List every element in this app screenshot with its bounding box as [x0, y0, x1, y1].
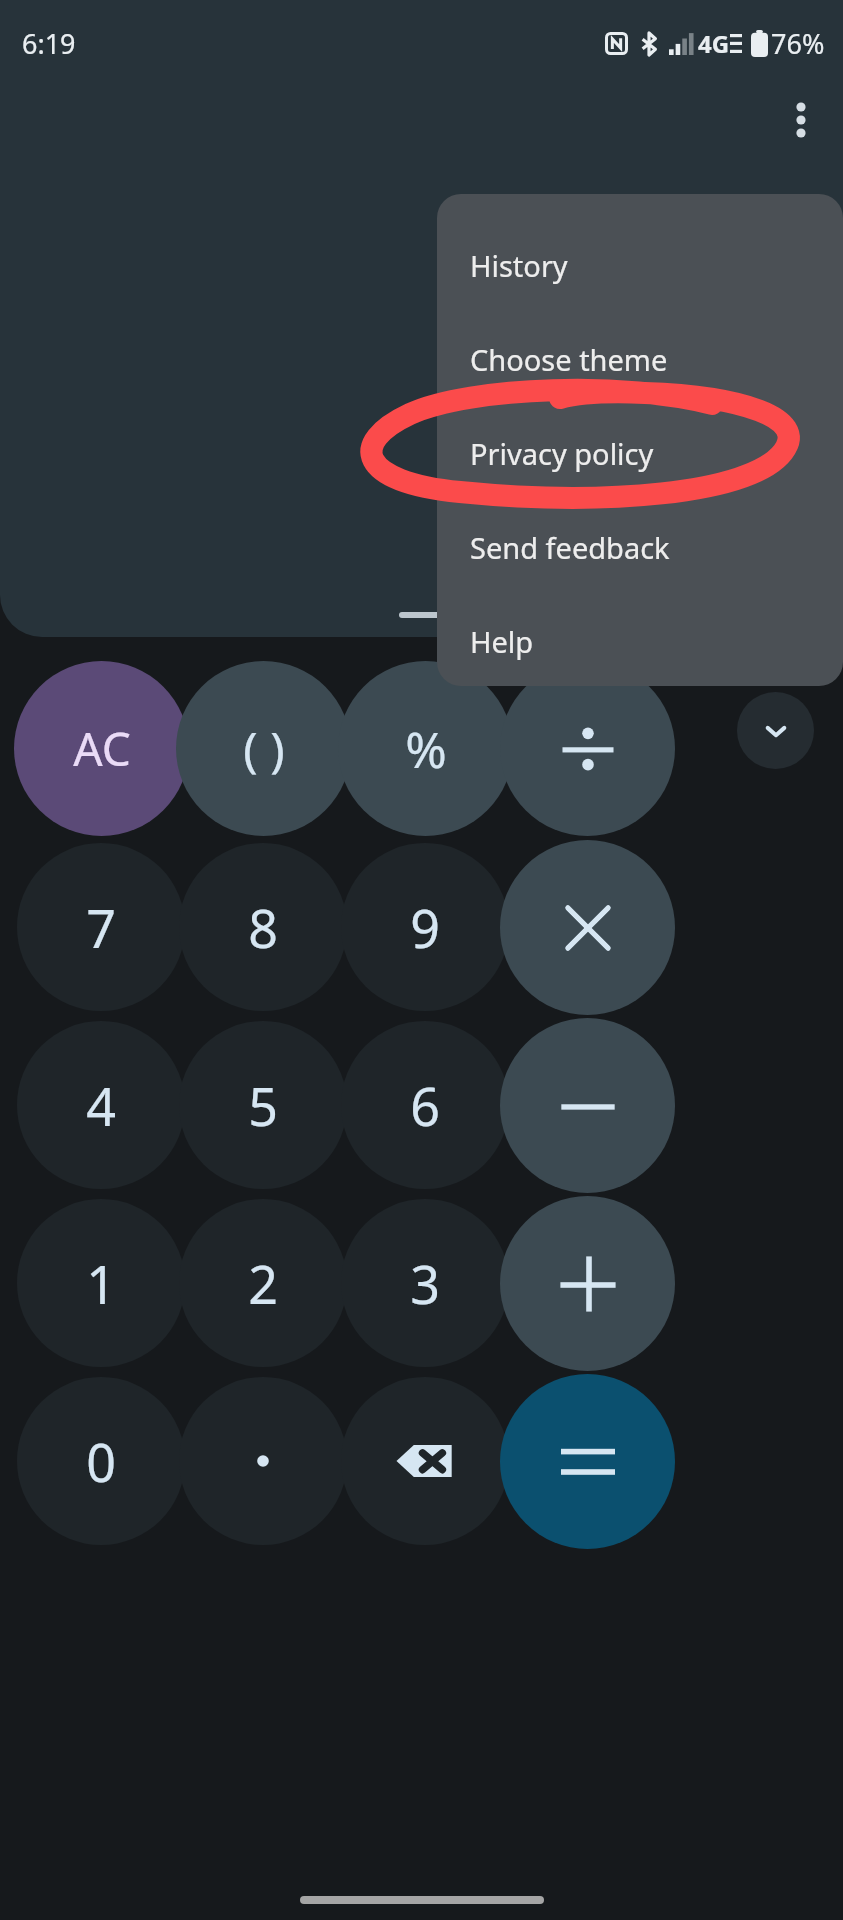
button[interactable]: Decimal point	[179, 1377, 347, 1545]
button[interactable]: Multiply	[500, 840, 675, 1015]
staticText: 2	[248, 1248, 278, 1319]
button[interactable]: Choose theme	[437, 312, 843, 406]
button[interactable]: !	[590, 688, 700, 774]
button[interactable]: Minus	[500, 1018, 675, 1193]
button[interactable]: Privacy policy	[437, 406, 843, 500]
button[interactable]: π	[235, 688, 345, 774]
staticText: %	[405, 715, 447, 783]
button[interactable]: History	[437, 218, 843, 312]
button[interactable]: ( )	[176, 661, 351, 836]
staticText: ( )	[243, 716, 285, 781]
button[interactable]: Equals	[500, 1374, 675, 1549]
button[interactable]: 4	[17, 1021, 185, 1189]
button[interactable]: Expand keypad	[737, 692, 814, 769]
button[interactable]: More options	[773, 92, 829, 148]
staticText: √	[99, 706, 128, 757]
staticText: 3	[410, 1248, 440, 1319]
staticText: π	[276, 701, 305, 761]
button[interactable]: 1	[17, 1199, 185, 1367]
button[interactable]: 0	[17, 1377, 185, 1545]
staticText: 6	[410, 1070, 440, 1141]
button[interactable]: Plus	[500, 1196, 675, 1371]
button[interactable]: 8	[179, 843, 347, 1011]
button[interactable]: Send feedback	[437, 500, 843, 594]
staticText: 9	[410, 892, 440, 963]
staticText: AC	[73, 717, 131, 780]
button[interactable]: 2	[179, 1199, 347, 1367]
staticText: Choose theme	[470, 340, 668, 379]
staticText: 5	[248, 1070, 278, 1141]
button[interactable]: 6	[341, 1021, 509, 1189]
button[interactable]: %	[338, 661, 513, 836]
staticText: 1	[86, 1248, 116, 1319]
staticText: 76%	[771, 25, 825, 62]
button[interactable]: 9	[341, 843, 509, 1011]
button[interactable]: 5	[179, 1021, 347, 1189]
button[interactable]: √	[58, 688, 168, 774]
staticText: History	[470, 246, 568, 285]
button[interactable]: Divide	[500, 661, 675, 836]
staticText: Send feedback	[470, 528, 670, 567]
staticText: 6:19	[22, 25, 76, 62]
staticText: Privacy policy	[470, 434, 654, 473]
button[interactable]: 7	[17, 843, 185, 1011]
button[interactable]: 3	[341, 1199, 509, 1367]
button[interactable]: ^	[413, 688, 523, 774]
button[interactable]: Delete	[341, 1377, 509, 1545]
staticText: Help	[470, 622, 534, 661]
staticText: 4G	[698, 27, 730, 60]
button[interactable]: Help	[437, 594, 843, 686]
button[interactable]: AC	[14, 661, 189, 836]
staticText: 4	[86, 1070, 116, 1141]
staticText: 7	[86, 892, 116, 963]
staticText: 0	[86, 1426, 116, 1497]
staticText: 8	[248, 892, 278, 963]
